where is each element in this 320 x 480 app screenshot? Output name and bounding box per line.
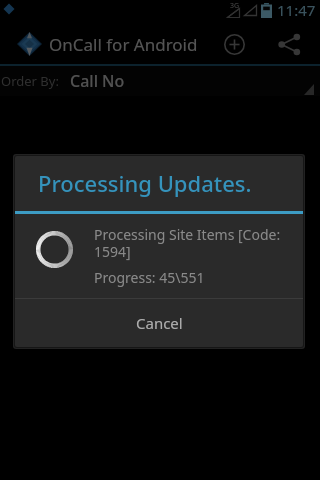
staticText: Progress: 45\551 xyxy=(94,268,205,287)
button[interactable]: Share xyxy=(267,22,312,66)
staticText: Cancel xyxy=(136,313,183,333)
staticText: Call No xyxy=(70,70,125,92)
button[interactable]: Order By: xyxy=(0,66,320,96)
staticText: Processing Updates. xyxy=(38,168,252,198)
button[interactable]: Cancel xyxy=(15,299,303,347)
staticText: Processing Site Items [Code: 1594] xyxy=(94,225,286,261)
staticText: Order By: xyxy=(1,72,59,90)
staticText: 11:47 xyxy=(277,0,316,20)
staticText: 3G xyxy=(230,1,240,11)
staticText: OnCall for Android xyxy=(49,33,198,56)
button[interactable]: Add xyxy=(212,22,257,66)
